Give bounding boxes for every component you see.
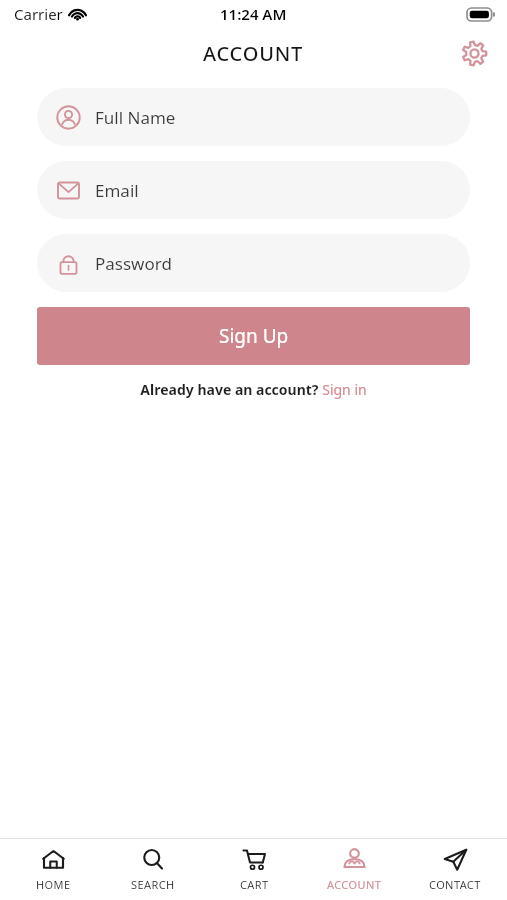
staticText: SEARCH	[131, 877, 175, 892]
button[interactable]: Settings	[455, 34, 493, 72]
button[interactable]: CART	[206, 839, 302, 900]
button[interactable]: Full Name	[37, 88, 470, 146]
button[interactable]: ACCOUNT	[306, 839, 402, 900]
staticText: 11:24 AM	[220, 4, 287, 24]
staticText: ACCOUNT	[327, 877, 382, 892]
staticText: Email	[95, 179, 139, 202]
button[interactable]: Sign Up	[37, 307, 470, 365]
staticText: Password	[95, 252, 172, 275]
button[interactable]: SEARCH	[105, 839, 201, 900]
button[interactable]: Password	[37, 234, 470, 292]
button[interactable]: CONTACT	[407, 839, 503, 900]
staticText: Already have an account? Sign in	[140, 380, 367, 399]
staticText: Carrier	[14, 4, 63, 24]
button[interactable]: Email	[37, 161, 470, 219]
staticText: Full Name	[95, 106, 176, 129]
staticText: CONTACT	[429, 877, 481, 892]
staticText: CART	[240, 877, 269, 892]
button[interactable]: HOME	[5, 839, 101, 900]
staticText: Sign Up	[219, 323, 289, 349]
button[interactable]: Already have an account? Sign in	[0, 380, 507, 399]
staticText: HOME	[36, 877, 71, 892]
staticText: ACCOUNT	[203, 40, 304, 67]
